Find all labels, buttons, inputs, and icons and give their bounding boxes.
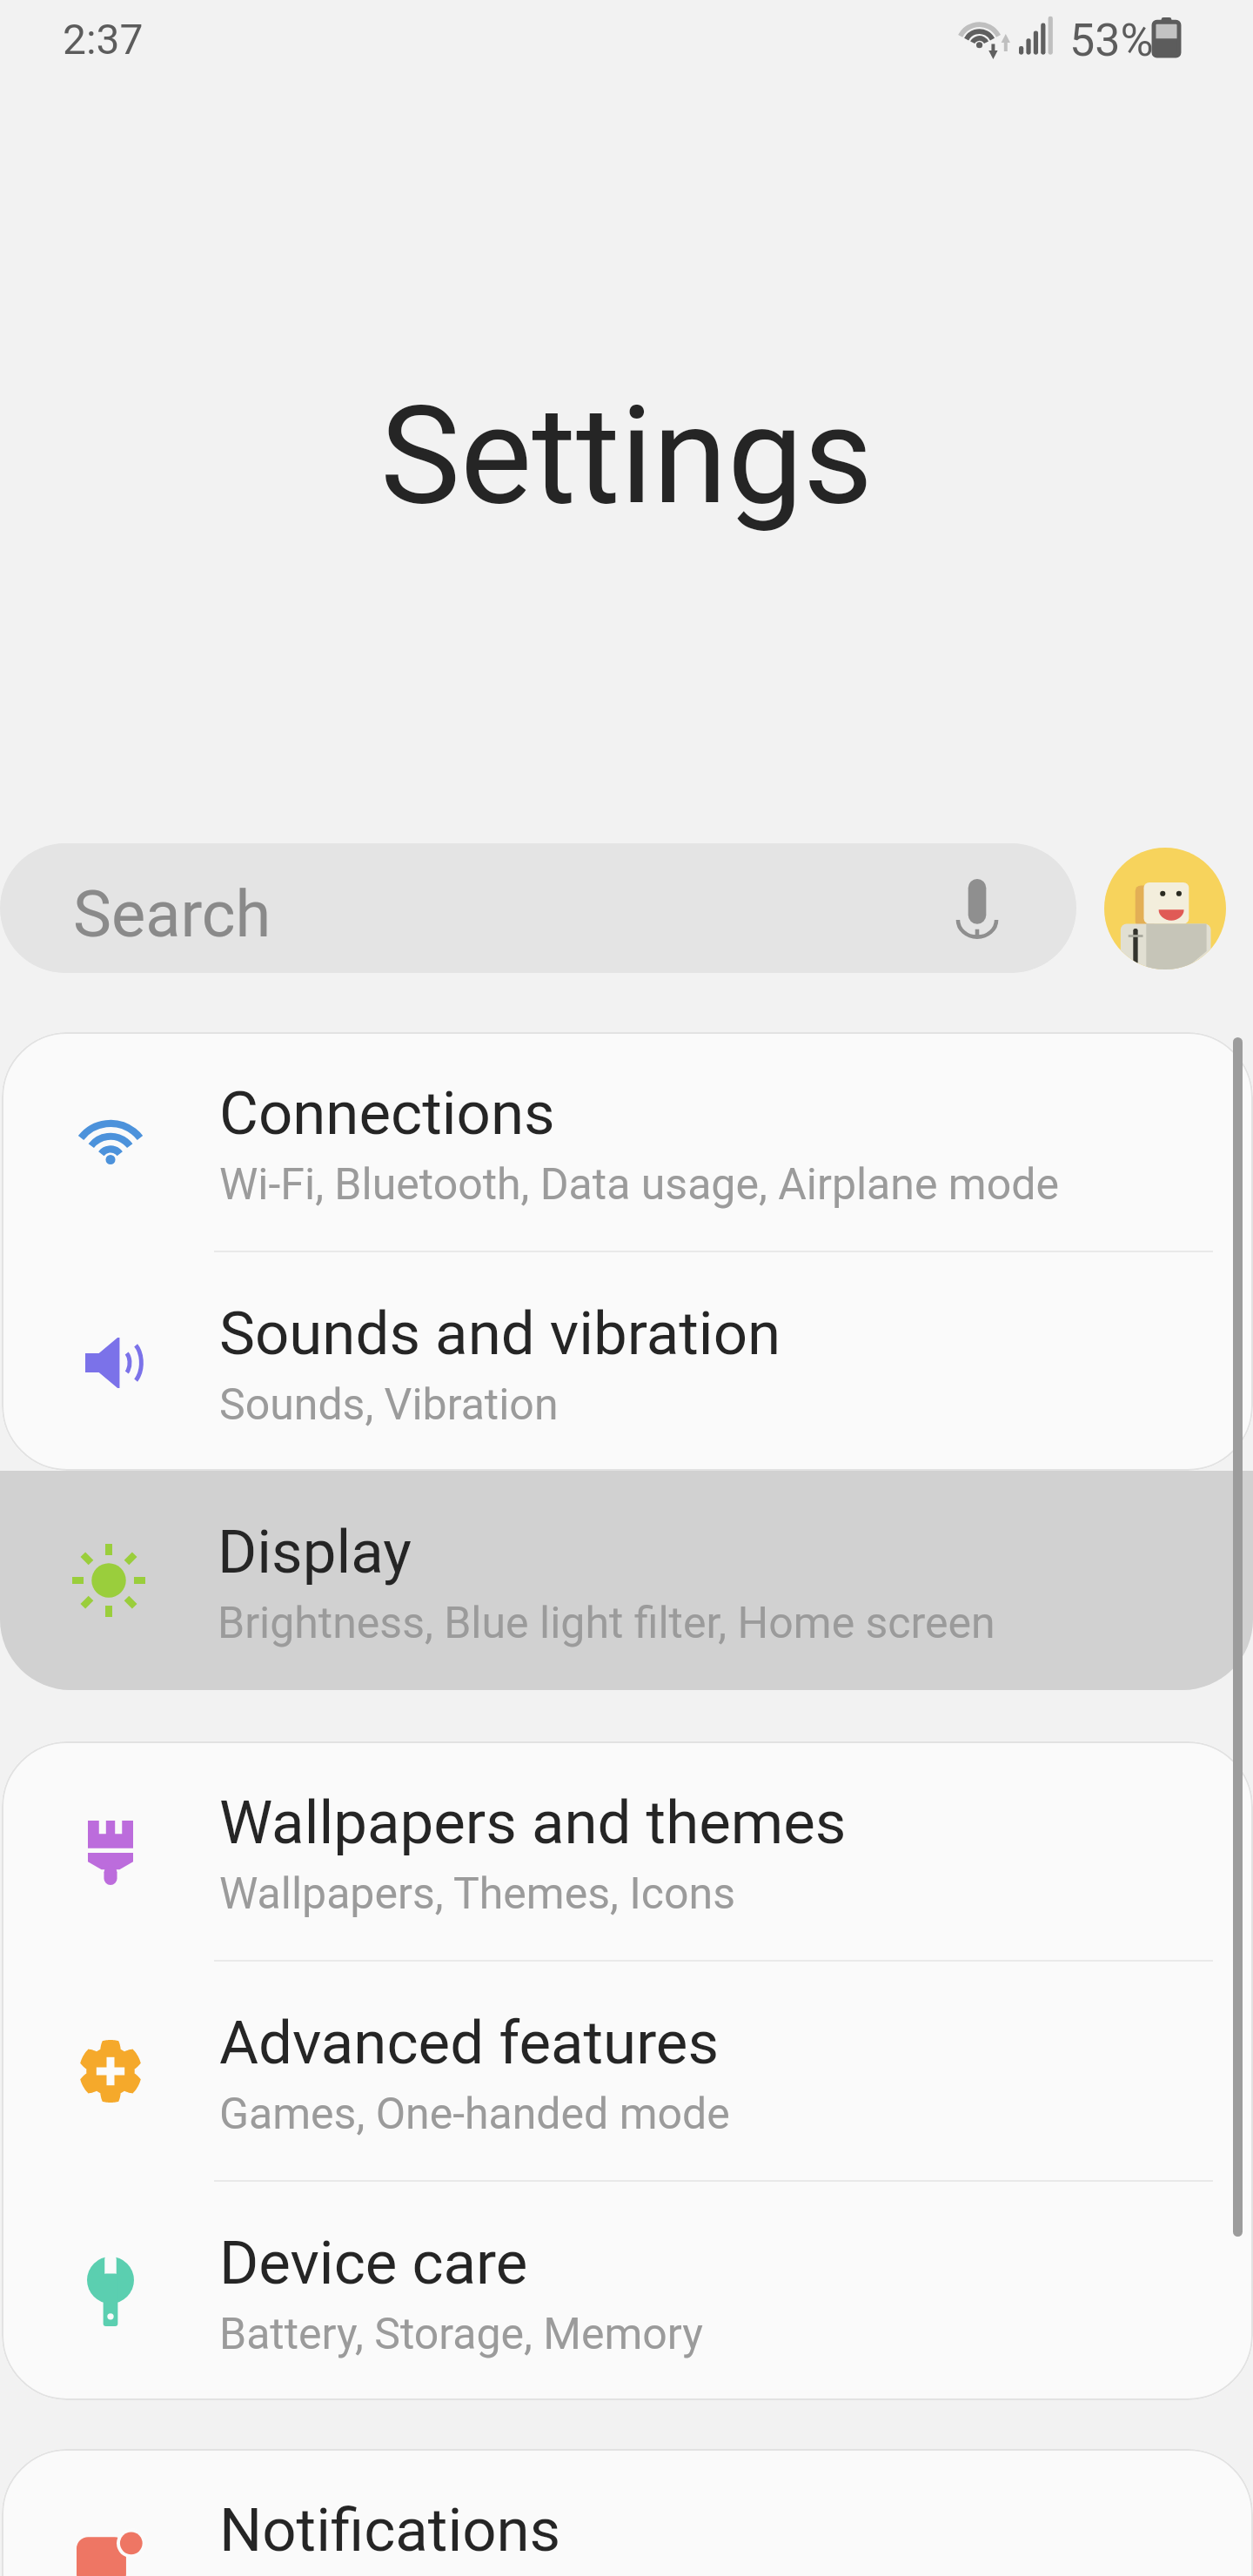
staticText: Battery, Storage, Memory [219,2309,703,2360]
staticText: Wallpapers, Themes, Icons [219,1868,735,1920]
button[interactable]: Device care [2,2182,1253,2400]
staticText: Sounds, Vibration [219,1379,559,1431]
button[interactable]: Notifications [2,2449,1253,2576]
button[interactable]: Advanced features [2,1962,1253,2180]
staticText: Wi-Fi, Bluetooth, Data usage, Airplane m… [219,1159,1059,1211]
staticText: Games, One-handed mode [219,2089,730,2140]
staticText: Advanced features [219,2008,720,2078]
staticText: 2:37 [63,15,144,64]
staticText: 53% [1069,14,1154,67]
staticText: Device care [219,2228,528,2298]
staticText: Connections [219,1078,555,1149]
staticText: Brightness, Blue light filter, Home scre… [218,1598,995,1649]
button[interactable]: Search [0,843,1076,973]
staticText: Notifications [219,2495,561,2566]
button[interactable]: Sounds and vibration [2,1252,1253,1471]
button[interactable]: Profile [1104,848,1226,969]
staticText: Sounds and vibration [219,1298,781,1369]
staticText: Search [73,876,271,952]
button[interactable]: Wallpapers and themes [2,1741,1253,1960]
staticText: Settings [0,377,1253,535]
button[interactable]: Display [0,1471,1253,1690]
button[interactable]: Connections [2,1032,1253,1251]
staticText: Display [218,1517,412,1587]
staticText: Wallpapers and themes [219,1788,847,1858]
